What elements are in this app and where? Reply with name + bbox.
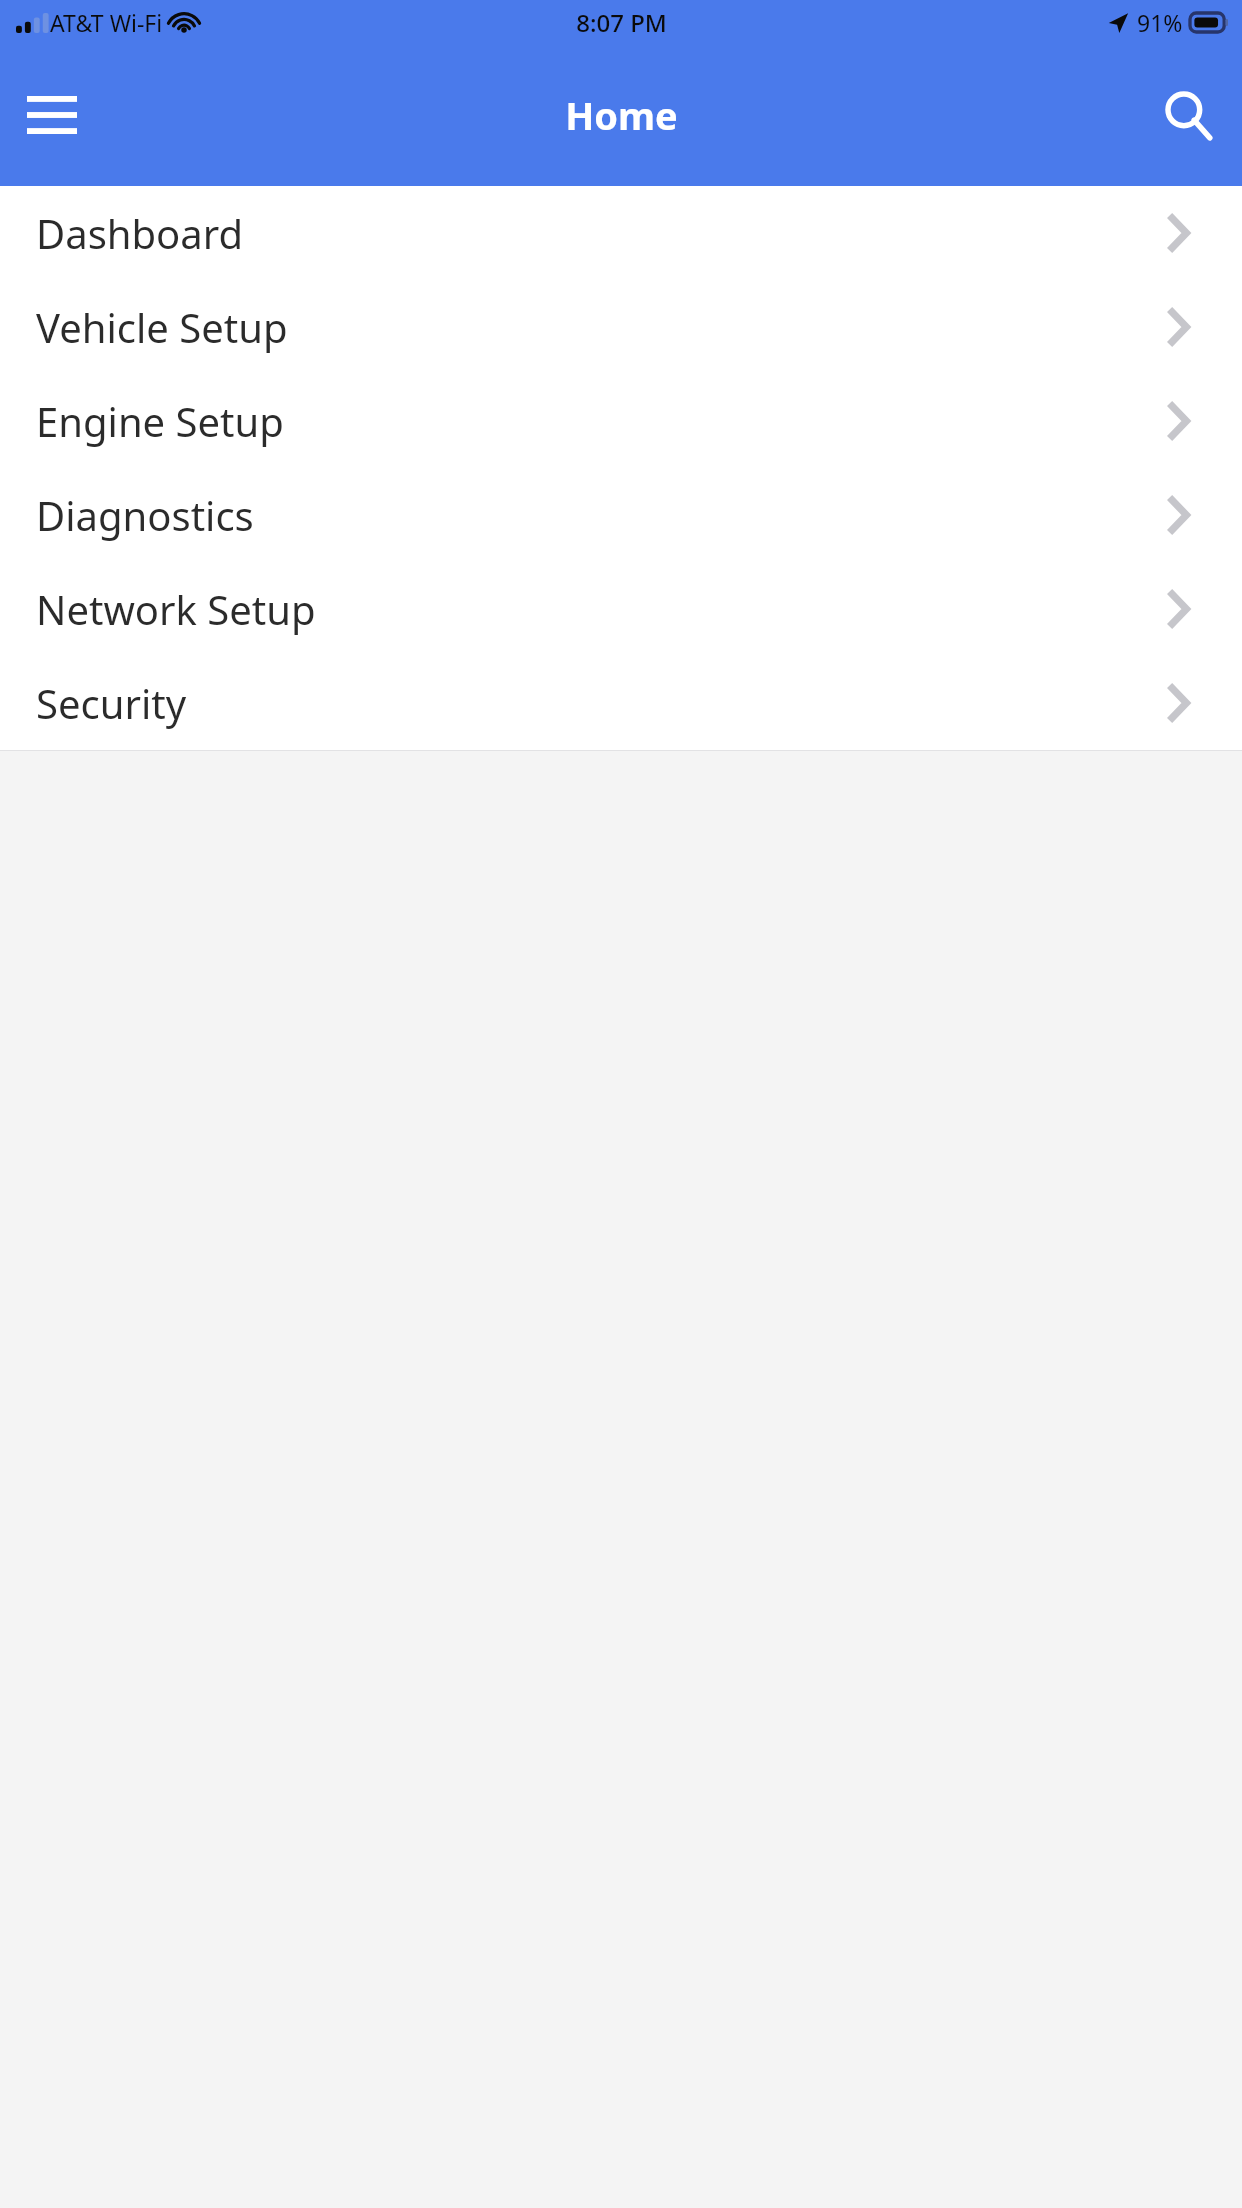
button[interactable]: Search [1148,75,1228,155]
staticText: 8:07 PM [576,6,667,39]
staticText: 91% [1137,7,1183,38]
button[interactable]: Security [0,656,1242,750]
staticText: AT&T Wi-Fi [50,7,163,38]
staticText: Security [36,676,187,730]
staticText: Home [565,89,678,141]
staticText: Network Setup [36,582,316,636]
staticText: Vehicle Setup [36,300,288,354]
button[interactable]: Engine Setup [0,374,1242,468]
button[interactable]: Vehicle Setup [0,280,1242,374]
button[interactable]: Dashboard [0,186,1242,280]
staticText: Engine Setup [36,394,284,448]
button[interactable]: Diagnostics [0,468,1242,562]
staticText: Diagnostics [36,488,254,542]
staticText: Dashboard [36,206,244,260]
button[interactable]: Open navigation menu [14,77,90,153]
button[interactable]: Network Setup [0,562,1242,656]
